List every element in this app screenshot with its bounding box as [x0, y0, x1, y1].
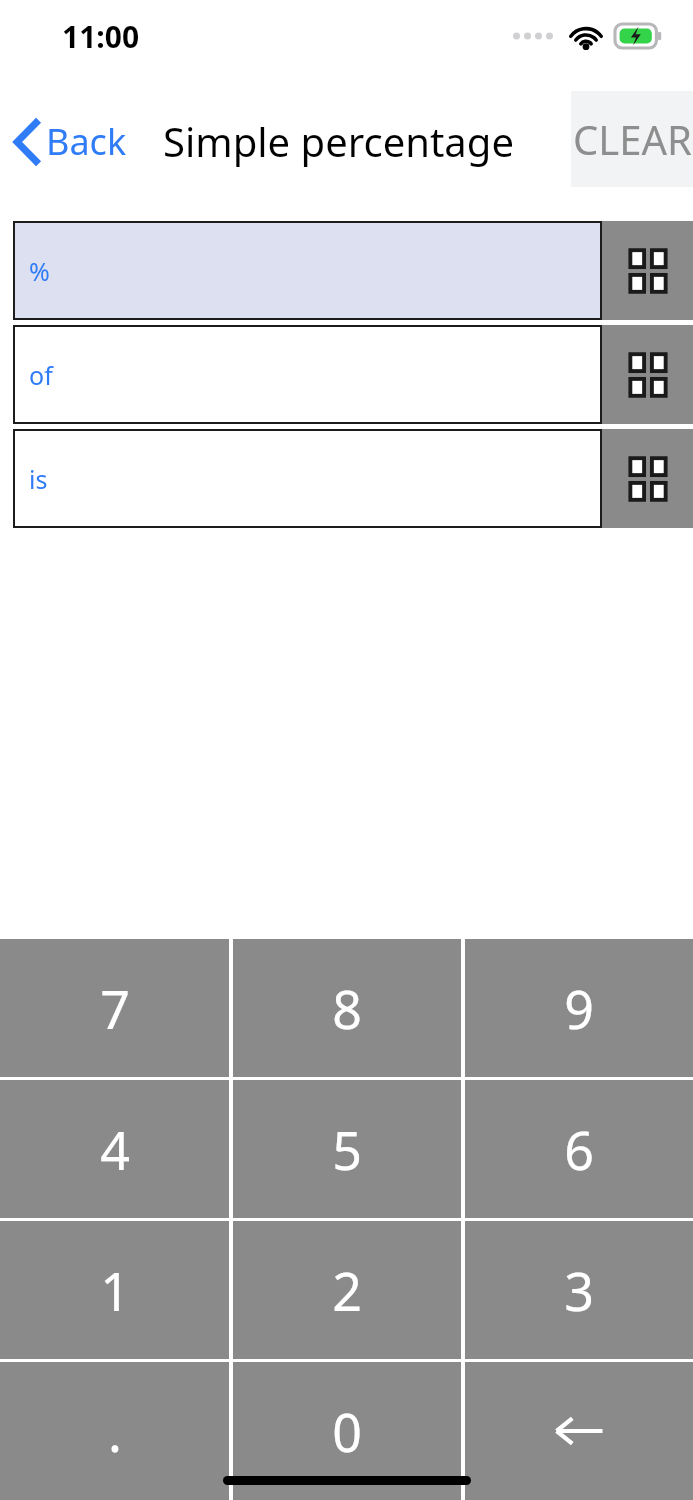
staticText: 9 [564, 973, 594, 1044]
button[interactable]: Open keypad [602, 221, 693, 320]
staticText: 8 [332, 973, 362, 1044]
staticText: 11:00 [62, 16, 140, 57]
staticText: 5 [332, 1114, 362, 1185]
staticText: 6 [564, 1114, 594, 1185]
button[interactable]: 5 [233, 1080, 461, 1218]
button[interactable]: 3 [465, 1221, 693, 1359]
staticText: Simple percentage [163, 114, 514, 168]
button[interactable]: 4 [0, 1080, 229, 1218]
staticText: 0 [332, 1396, 362, 1467]
button[interactable]: % [13, 221, 602, 320]
staticText: of [29, 358, 53, 392]
button[interactable]: 6 [465, 1080, 693, 1218]
button[interactable]: Backspace [465, 1362, 693, 1500]
staticText: Back [46, 117, 127, 166]
staticText: 4 [100, 1114, 130, 1185]
button[interactable]: of [13, 325, 602, 424]
staticText: 7 [100, 973, 130, 1044]
button[interactable]: 8 [233, 939, 461, 1077]
staticText: CLEAR [573, 112, 692, 166]
button[interactable]: Open keypad [602, 429, 693, 528]
staticText: 3 [564, 1255, 594, 1326]
staticText: 1 [100, 1255, 130, 1326]
staticText: is [29, 462, 48, 496]
staticText: . [108, 1396, 122, 1467]
button[interactable]: 9 [465, 939, 693, 1077]
button[interactable]: CLEAR [571, 91, 693, 187]
button[interactable]: 7 [0, 939, 229, 1077]
button[interactable]: Open keypad [602, 325, 693, 424]
button[interactable]: 1 [0, 1221, 229, 1359]
staticText: 2 [332, 1255, 362, 1326]
button[interactable]: Back [14, 117, 127, 166]
button[interactable]: is [13, 429, 602, 528]
button[interactable]: 0 [233, 1362, 461, 1500]
button[interactable]: . [0, 1362, 229, 1500]
staticText: % [29, 254, 50, 288]
button[interactable]: 2 [233, 1221, 461, 1359]
